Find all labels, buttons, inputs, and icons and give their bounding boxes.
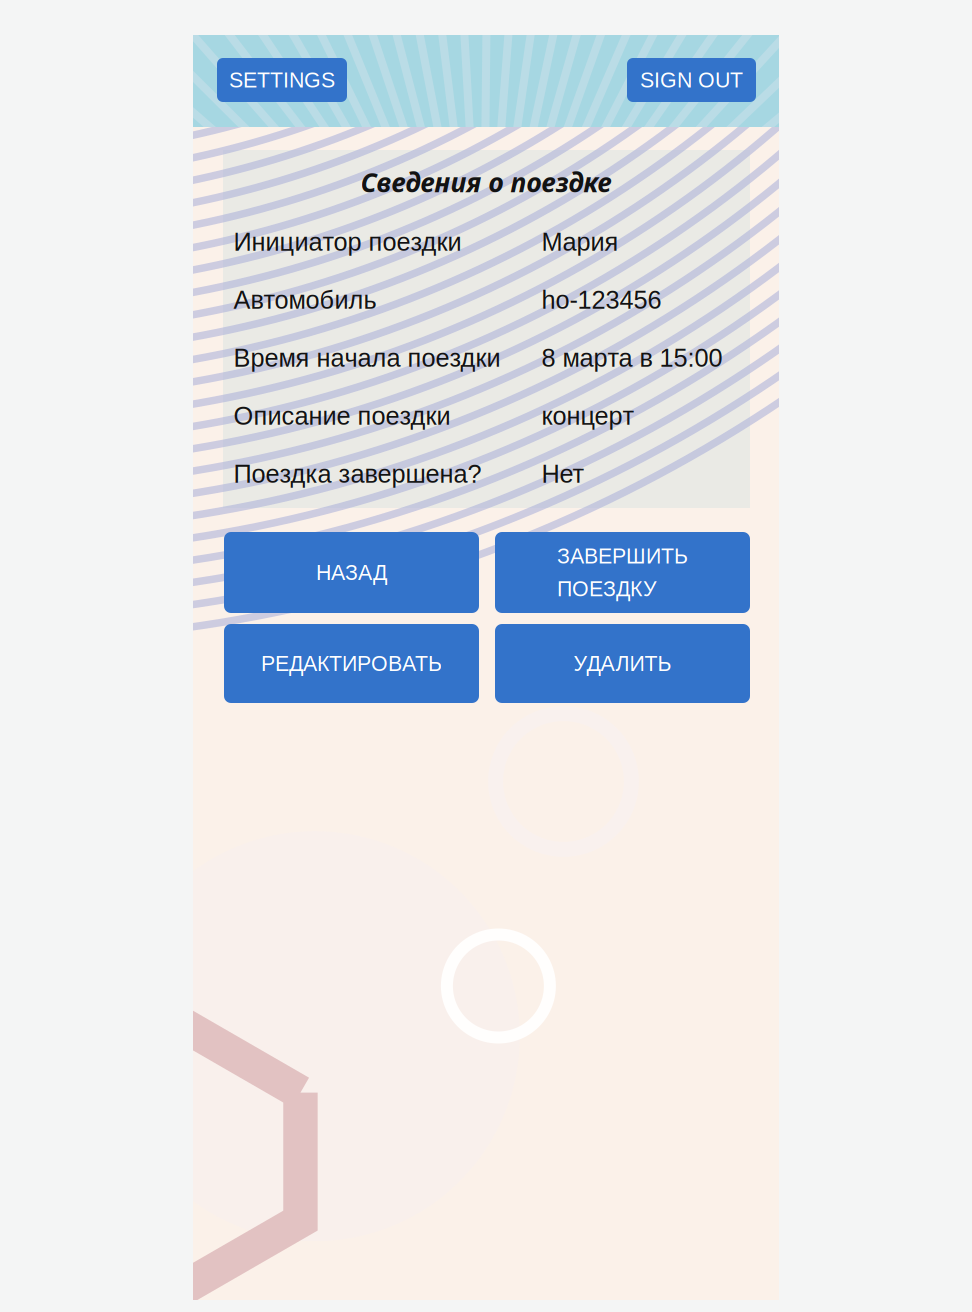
staticText: SETTINGS (229, 68, 335, 92)
staticText: НАЗАД (316, 561, 387, 584)
staticText: Поездка завершена? (233, 460, 481, 488)
staticText: Автомобиль (233, 286, 376, 314)
staticText: УДАЛИТЬ (573, 652, 671, 675)
button[interactable]: SIGN OUT (627, 58, 756, 102)
button[interactable]: РЕДАКТИРОВАТЬ (224, 624, 479, 703)
staticText: Сведения о поездке (360, 164, 611, 200)
staticText: ЗАВЕРШИТЬ ПОЕЗДКУ (557, 544, 688, 601)
staticText: 8 марта в 15:00 (541, 344, 722, 372)
staticText: Описание поездки (233, 402, 450, 430)
staticText: Инициатор поездки (233, 228, 461, 256)
button[interactable]: SETTINGS (217, 58, 347, 102)
staticText: ho-123456 (541, 286, 661, 314)
staticText: концерт (541, 402, 634, 430)
staticText: Мария (541, 228, 618, 256)
staticText: Нет (541, 460, 584, 488)
staticText: Время начала поездки (233, 344, 500, 372)
staticText: РЕДАКТИРОВАТЬ (261, 652, 442, 675)
staticText: SIGN OUT (640, 68, 743, 92)
button[interactable]: УДАЛИТЬ (495, 624, 750, 703)
button[interactable]: НАЗАД (224, 532, 479, 613)
button[interactable]: ЗАВЕРШИТЬ ПОЕЗДКУ (495, 532, 750, 613)
